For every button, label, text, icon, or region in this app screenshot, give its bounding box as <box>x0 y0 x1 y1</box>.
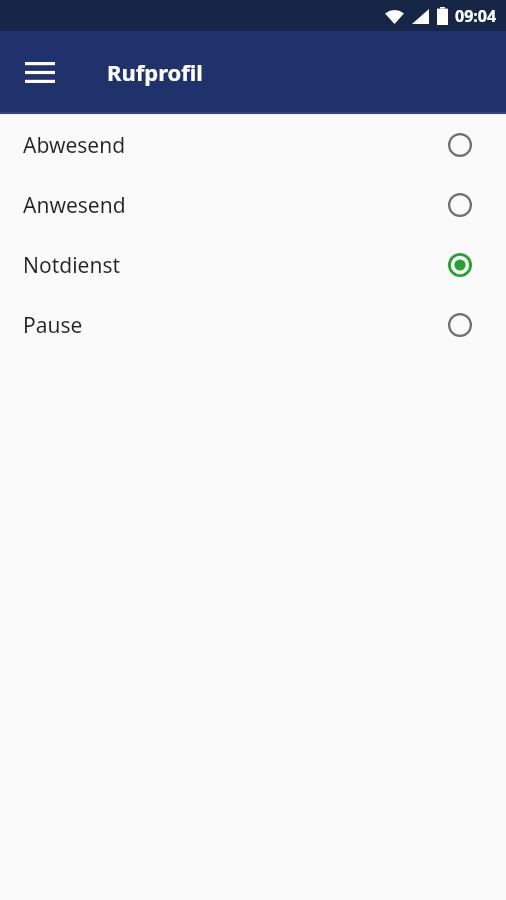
staticText: Anwesend <box>23 191 447 220</box>
button[interactable]: Anwesend <box>0 175 506 235</box>
button[interactable]: Pause <box>0 295 506 355</box>
staticText: Notdienst <box>23 251 447 280</box>
button[interactable]: Notdienst <box>0 235 506 295</box>
staticText: Pause <box>23 311 447 340</box>
button[interactable]: Abwesend <box>0 115 506 175</box>
staticText: 09:04 <box>455 5 497 27</box>
button[interactable]: Menu <box>13 48 67 96</box>
staticText: Rufprofil <box>107 57 203 87</box>
staticText: Abwesend <box>23 131 447 160</box>
